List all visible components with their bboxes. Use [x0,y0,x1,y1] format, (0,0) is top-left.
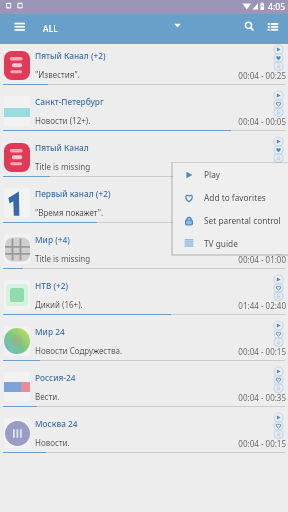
button[interactable]: Первый канал (+2) [0,182,288,228]
button[interactable]: Мир 24 [0,320,288,366]
button[interactable]: Мир (+4) [0,228,288,274]
staticText: Мир (+4) [35,234,70,245]
staticText: "Известия". [35,69,80,80]
button[interactable]: Select group [165,14,190,44]
button[interactable]: Add to favorites [173,186,288,209]
button[interactable]: Open navigation menu [5,14,35,44]
staticText: 00:04 - 00:15 [238,346,286,357]
button[interactable]: Санкт-Петербург [0,90,288,136]
staticText: Первый канал (+2) [35,188,111,199]
button[interactable]: Play [173,163,288,186]
staticText: Title is missing [35,253,91,264]
staticText: ALL [43,23,58,34]
staticText: Новости. [35,437,70,448]
staticText: 00:04 - 00:25 [238,70,286,81]
button[interactable]: Пятый Канал [0,136,288,182]
staticText: Title is missing [35,161,91,172]
staticText: Москва 24 [35,418,78,429]
button[interactable]: НТВ (+2) [0,274,288,320]
staticText: 00:04 - 00:05 [238,116,286,127]
staticText: Санкт-Петербург [35,96,104,107]
staticText: Add to favorites [204,192,266,203]
staticText: Play [204,169,221,180]
staticText: Пятый Канал (+2) [35,50,106,61]
staticText: Новости Содружества. [35,345,123,356]
button[interactable]: TV guide [173,232,288,254]
button[interactable]: Россия-24 [0,366,288,412]
staticText: 4:05 [268,1,286,13]
staticText: Дикий (16+). [35,299,83,310]
staticText: Пятый Канал [35,142,89,153]
button[interactable]: Change view [261,14,286,44]
staticText: 00:04 - 00:35 [238,392,286,403]
staticText: Set parental control [204,215,281,226]
staticText: TV guide [204,238,238,249]
button[interactable]: Set parental control [173,209,288,232]
staticText: Вести. [35,391,60,402]
staticText: "Время покажет". [35,207,104,218]
staticText: Мир 24 [35,326,65,337]
staticText: НТВ (+2) [35,280,69,291]
staticText: 00:04 - 01:00 [238,254,286,265]
button[interactable]: Москва 24 [0,412,288,458]
staticText: 01:44 - 02:40 [238,300,286,311]
staticText: 00:04 - 00:15 [238,438,286,449]
staticText: Россия-24 [35,372,76,383]
button[interactable]: Пятый Канал (+2) [0,44,288,90]
staticText: Новости (12+). [35,115,91,126]
button[interactable]: Search [237,14,262,44]
button[interactable]: Play [173,163,288,254]
